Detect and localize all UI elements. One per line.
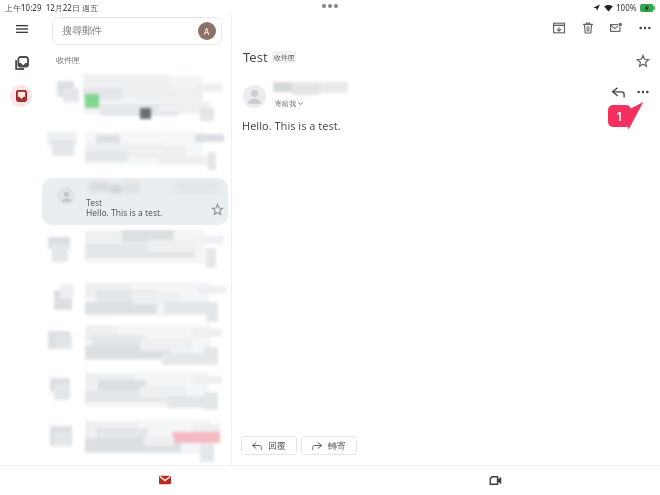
staticText: 收件匣	[274, 53, 295, 62]
button[interactable]: Reply	[609, 83, 627, 101]
button[interactable]: Mark as unread	[606, 18, 626, 38]
button[interactable]: 回覆	[241, 436, 297, 455]
button[interactable]: Inbox	[5, 80, 37, 112]
staticText: 回覆	[268, 440, 286, 451]
button[interactable]: Star	[209, 201, 225, 217]
button[interactable]: All inboxes	[6, 48, 36, 78]
button[interactable]: Delete	[578, 18, 598, 38]
staticText: Test	[243, 48, 268, 66]
staticText: 100%	[616, 2, 637, 13]
button[interactable]: Gmail	[155, 470, 175, 490]
button[interactable]: Meet	[485, 470, 505, 490]
button[interactable]: Test	[42, 178, 228, 225]
staticText: Test	[86, 197, 103, 209]
staticText: 收件匣	[56, 55, 80, 65]
button[interactable]: More options	[635, 18, 655, 38]
button[interactable]: More message options	[634, 83, 652, 101]
staticText: A	[204, 26, 210, 37]
staticText: Hello. This is a test.	[242, 118, 341, 133]
button[interactable]: 轉寄	[301, 436, 357, 455]
staticText: 搜尋郵件	[62, 24, 102, 37]
button[interactable]: 搜尋郵件	[52, 17, 222, 45]
button[interactable]: Open navigation menu	[9, 16, 35, 42]
button[interactable]: Star	[634, 52, 652, 70]
staticText: 上午10:29 12月22日 週五	[5, 2, 99, 13]
staticText: 轉寄	[328, 440, 346, 451]
staticText: 1	[616, 107, 624, 125]
staticText: 寄給我	[275, 99, 296, 108]
button[interactable]: Archive	[549, 18, 569, 38]
staticText: Hello. This is a test.	[86, 207, 163, 219]
